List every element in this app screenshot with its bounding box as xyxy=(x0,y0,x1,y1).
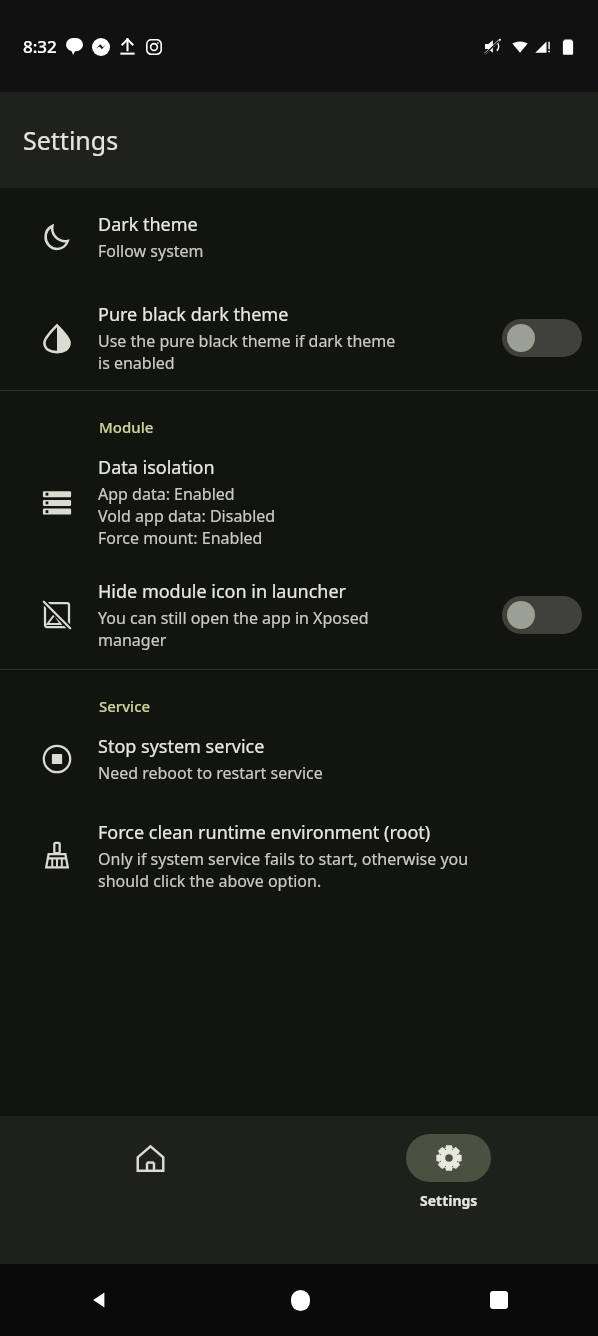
staticText: Settings xyxy=(420,1191,478,1210)
button[interactable]: Force clean runtime environment (root) xyxy=(0,808,598,910)
staticText: Only if system service fails to start, o… xyxy=(98,848,469,870)
staticText: Data isolation xyxy=(98,455,215,480)
staticText: App data: Enabled xyxy=(98,483,235,505)
staticText: Need reboot to restart service xyxy=(98,762,323,784)
button[interactable]: Recent apps xyxy=(475,1276,523,1324)
button[interactable]: Toggle xyxy=(502,596,582,634)
staticText: Hide module icon in launcher xyxy=(98,579,347,604)
staticText: Force mount: Enabled xyxy=(98,527,263,549)
staticText: should click the above option. xyxy=(98,870,322,892)
staticText: Stop system service xyxy=(98,734,265,759)
staticText: You can still open the app in Xposed xyxy=(98,607,369,629)
button[interactable]: Pure black dark theme xyxy=(0,288,598,390)
staticText: Force clean runtime environment (root) xyxy=(98,820,431,845)
staticText: Dark theme xyxy=(98,212,198,237)
button[interactable]: Settings xyxy=(406,1116,491,1220)
staticText: manager xyxy=(98,629,167,651)
staticText: Module xyxy=(99,417,154,437)
staticText: Pure black dark theme xyxy=(98,302,289,327)
staticText: Settings xyxy=(23,123,119,157)
staticText: 8:32 xyxy=(23,35,57,58)
button[interactable]: Dark theme xyxy=(0,188,598,288)
button[interactable]: Hide module icon in launcher xyxy=(0,565,598,669)
staticText: Service xyxy=(99,696,151,716)
staticText: Use the pure black theme if dark theme xyxy=(98,330,396,352)
button[interactable]: Home xyxy=(276,1276,324,1324)
staticText: Follow system xyxy=(98,240,204,262)
button[interactable]: Home xyxy=(86,1116,214,1194)
staticText: is enabled xyxy=(98,352,175,374)
button[interactable]: Data isolation xyxy=(0,445,598,565)
button[interactable]: Stop system service xyxy=(0,724,598,808)
button[interactable]: Toggle xyxy=(502,319,582,357)
button[interactable]: Back xyxy=(76,1276,124,1324)
staticText: Vold app data: Disabled xyxy=(98,505,276,527)
